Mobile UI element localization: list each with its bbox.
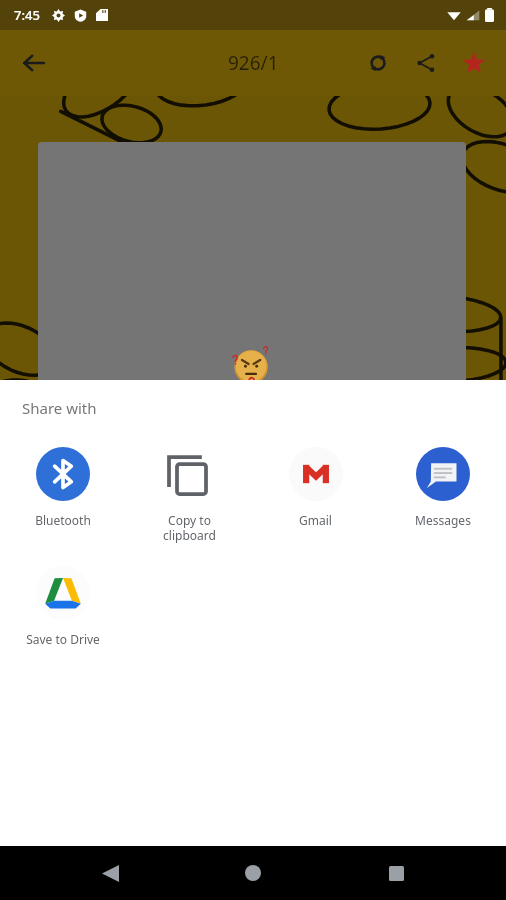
button[interactable]: Recents <box>374 851 418 895</box>
button[interactable]: Rotate <box>354 39 402 87</box>
staticText: Save to Drive <box>26 631 100 647</box>
button[interactable]: Back <box>10 39 58 87</box>
staticText: Bluetooth <box>35 512 91 528</box>
staticText: 926/1 <box>228 50 279 76</box>
button[interactable]: Share <box>402 39 450 87</box>
button[interactable]: Back <box>88 851 132 895</box>
staticText: Gmail <box>299 512 332 528</box>
staticText: 7:45 <box>14 6 40 24</box>
button[interactable]: Save to Drive <box>0 561 126 651</box>
staticText: Copy to clipboard <box>163 512 216 543</box>
staticText: Messages <box>415 512 471 528</box>
button[interactable]: Favorite <box>450 39 498 87</box>
button[interactable]: Gmail <box>252 442 379 532</box>
button[interactable]: Copy to clipboard <box>126 442 252 547</box>
button[interactable]: Messages <box>379 442 506 532</box>
staticText: Share with <box>22 398 97 418</box>
button[interactable]: Bluetooth <box>0 442 126 532</box>
button[interactable]: Home <box>231 851 275 895</box>
